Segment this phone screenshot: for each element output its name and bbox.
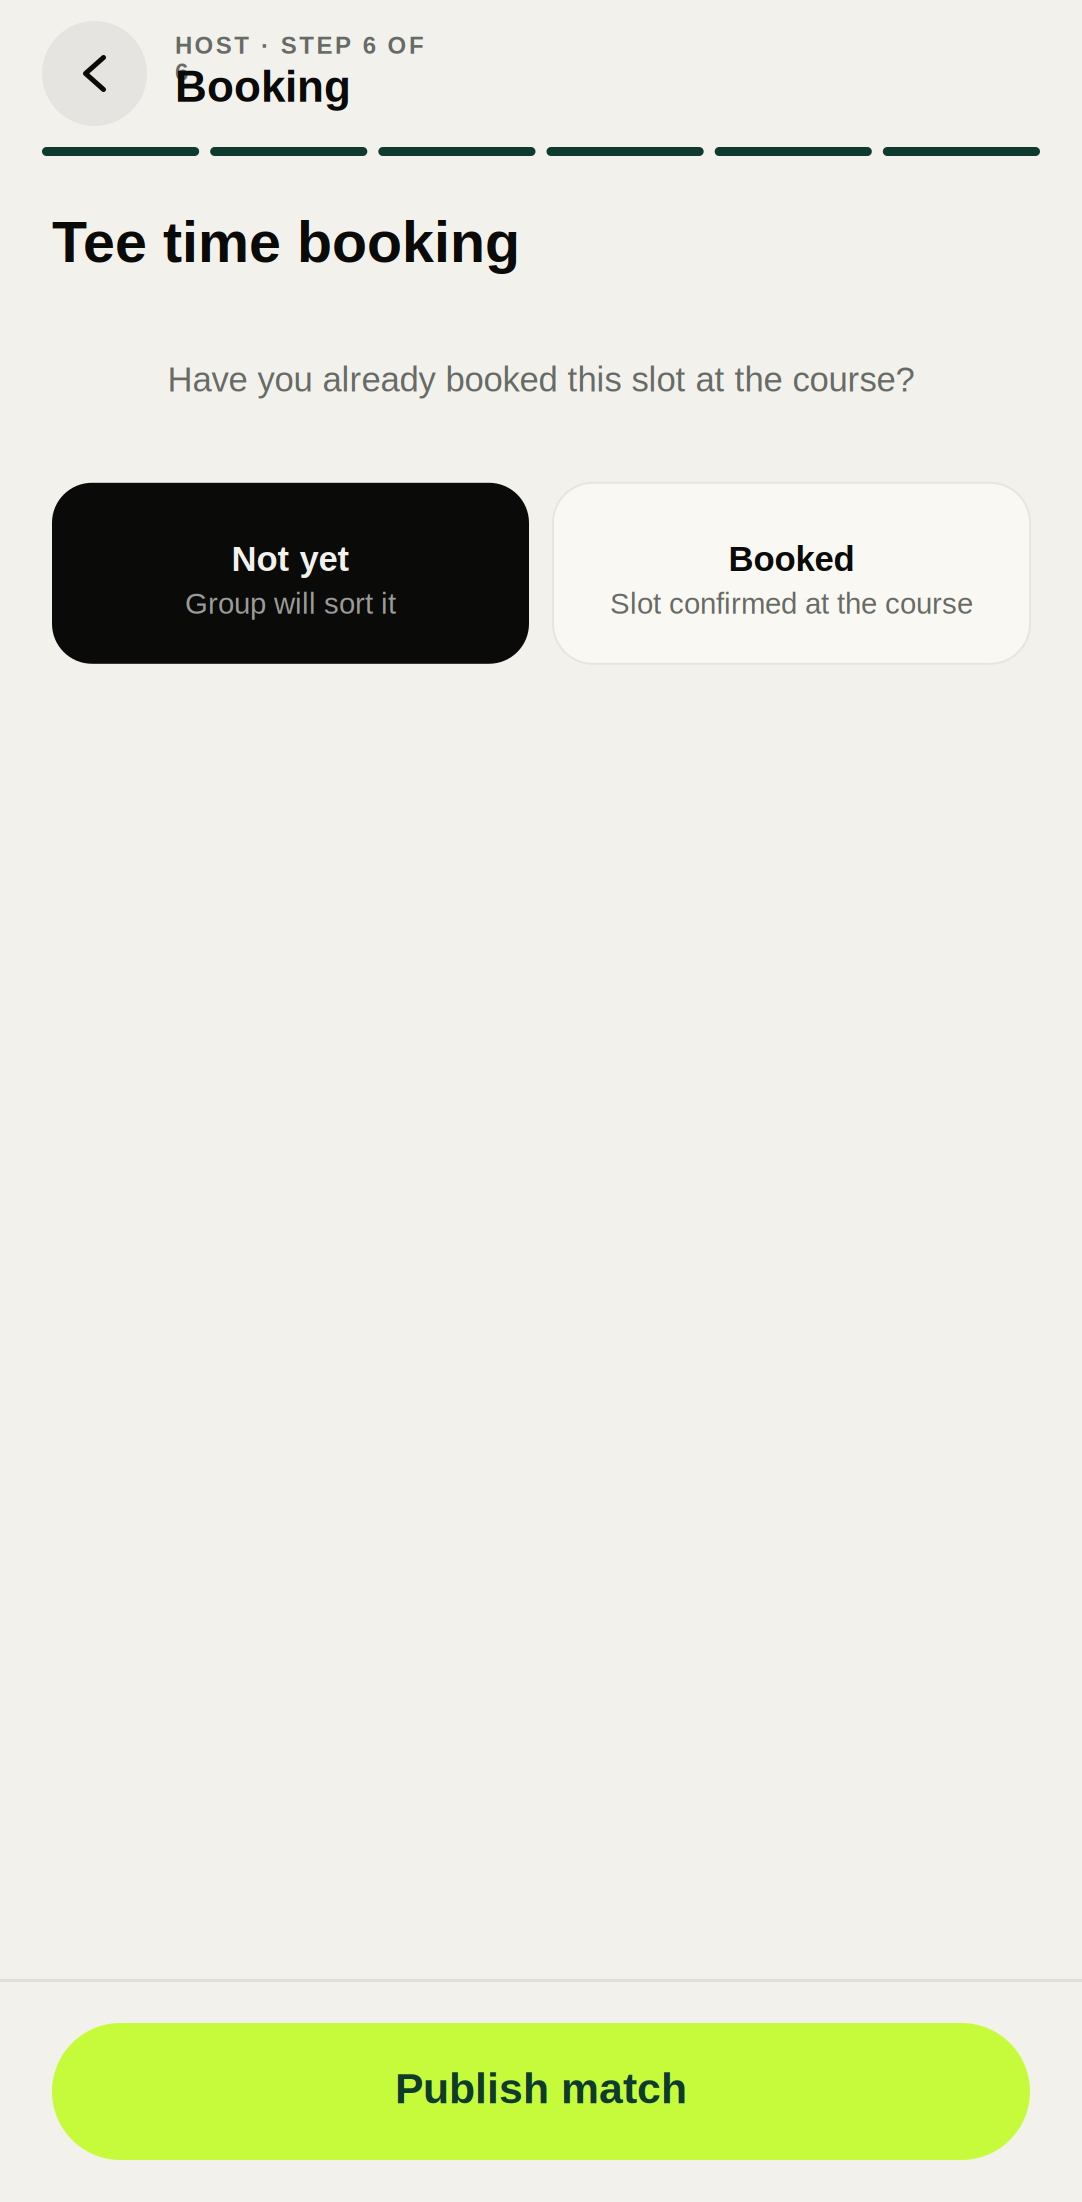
staticText: HOST · STEP 6 OF 6 xyxy=(175,32,449,59)
staticText: Group will sort it xyxy=(185,587,396,620)
button[interactable]: Back xyxy=(42,21,147,126)
staticText: Booked xyxy=(728,539,854,578)
staticText: Booking xyxy=(175,62,351,111)
staticText: Have you already booked this slot at the… xyxy=(167,360,914,399)
staticText: Slot confirmed at the course xyxy=(610,587,973,620)
button[interactable]: Booked xyxy=(553,483,1030,664)
staticText: Tee time booking xyxy=(52,210,520,274)
staticText: Not yet xyxy=(231,539,349,578)
button[interactable]: Publish match xyxy=(52,2023,1030,2160)
staticText: Publish match xyxy=(395,2065,687,2112)
button[interactable]: Not yet xyxy=(52,483,529,664)
